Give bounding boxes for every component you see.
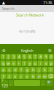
staticText: 0 — [50, 54, 52, 59]
staticText: Search — [2, 6, 14, 11]
button[interactable]: l — [48, 67, 53, 72]
button[interactable]: . — [40, 80, 45, 86]
staticText: 6 — [29, 54, 31, 59]
staticText: j — [38, 67, 39, 72]
staticText: i — [40, 61, 41, 66]
staticText: r — [18, 61, 20, 66]
staticText: n — [38, 74, 40, 79]
button[interactable]: w — [6, 60, 11, 66]
button[interactable]: 7 — [33, 54, 37, 59]
button[interactable]: p — [49, 60, 53, 66]
staticText: z — [8, 74, 10, 79]
staticText: Search Network — [16, 12, 44, 18]
staticText: h — [32, 67, 34, 72]
button[interactable]: 4 — [16, 54, 21, 59]
staticText: p — [50, 61, 52, 66]
staticText: , — [10, 80, 11, 86]
staticText: 9 — [45, 54, 47, 59]
button[interactable]: y — [27, 60, 32, 66]
staticText: 11:36 — [43, 0, 52, 5]
button[interactable]: c — [18, 73, 24, 79]
button[interactable]: g — [24, 67, 30, 72]
staticText: 5 — [23, 54, 25, 59]
staticText: l — [50, 67, 51, 72]
button[interactable]: 9 — [43, 54, 48, 59]
staticText: English — [21, 48, 33, 53]
button[interactable]: s — [6, 67, 12, 72]
staticText: 4 — [18, 54, 20, 59]
button[interactable]: b — [30, 73, 36, 79]
button[interactable]: u — [33, 60, 37, 66]
staticText: f — [21, 67, 22, 72]
button[interactable]: ⌫ — [48, 73, 53, 79]
button[interactable]: 2 — [6, 54, 11, 59]
button[interactable]: t — [22, 60, 27, 66]
staticText: . — [42, 80, 43, 86]
staticText: ▲ — [2, 0, 5, 5]
staticText: y — [29, 61, 31, 66]
staticText: 🔍 — [47, 81, 52, 85]
button[interactable]: j — [36, 67, 42, 72]
button[interactable]: 3 — [11, 54, 16, 59]
staticText: 2 — [7, 54, 9, 59]
staticText: no results — [18, 28, 35, 34]
button[interactable]: i — [38, 60, 43, 66]
staticText: e — [13, 61, 15, 66]
button[interactable]: r — [16, 60, 21, 66]
staticText: ?123 — [1, 78, 7, 88]
staticText: o — [45, 61, 47, 66]
button[interactable]: d — [12, 67, 18, 72]
staticText: k — [44, 67, 46, 72]
button[interactable]: 6 — [27, 54, 32, 59]
button[interactable]: n — [36, 73, 42, 79]
staticText: 3 — [13, 54, 15, 59]
button[interactable]: v — [24, 73, 30, 79]
staticText: q — [2, 61, 4, 66]
staticText: s — [8, 67, 10, 72]
button[interactable]: a — [0, 67, 6, 72]
button[interactable]: 0 — [49, 54, 53, 59]
button[interactable]: m — [42, 73, 47, 79]
button[interactable]: x — [12, 73, 18, 79]
button[interactable]: 8 — [38, 54, 43, 59]
button[interactable]: ⇧ — [0, 73, 6, 79]
staticText: w — [7, 61, 10, 66]
button[interactable]: 🔍 — [46, 80, 53, 86]
button[interactable]: z — [6, 73, 12, 79]
button[interactable]: k — [42, 67, 47, 72]
button[interactable]: 1 — [0, 54, 5, 59]
staticText: a — [2, 67, 4, 72]
staticText: u — [34, 61, 36, 66]
staticText: ⚙ — [2, 48, 6, 53]
staticText: b — [32, 74, 34, 79]
staticText: ⌫ — [48, 74, 54, 78]
button[interactable]: h — [30, 67, 36, 72]
staticText: d — [14, 67, 16, 72]
button[interactable]: f — [18, 67, 24, 72]
staticText: 7 — [34, 54, 36, 59]
staticText: 1 — [2, 54, 4, 59]
staticText: m — [43, 74, 47, 79]
button[interactable]: q — [0, 60, 5, 66]
staticText: ⇧ — [2, 74, 5, 78]
staticText: ☰ — [48, 48, 52, 53]
button[interactable]: ?123 — [1, 80, 8, 86]
staticText: t — [24, 61, 25, 66]
button[interactable]: 5 — [22, 54, 27, 59]
button[interactable]: o — [43, 60, 48, 66]
button[interactable]: e — [11, 60, 16, 66]
button[interactable]: Search — [0, 5, 54, 12]
staticText: 8 — [39, 54, 41, 59]
button[interactable]: , — [8, 80, 13, 86]
staticText: x — [14, 74, 16, 79]
staticText: c — [20, 74, 22, 79]
staticText: v — [26, 74, 28, 79]
staticText: g — [26, 67, 28, 72]
